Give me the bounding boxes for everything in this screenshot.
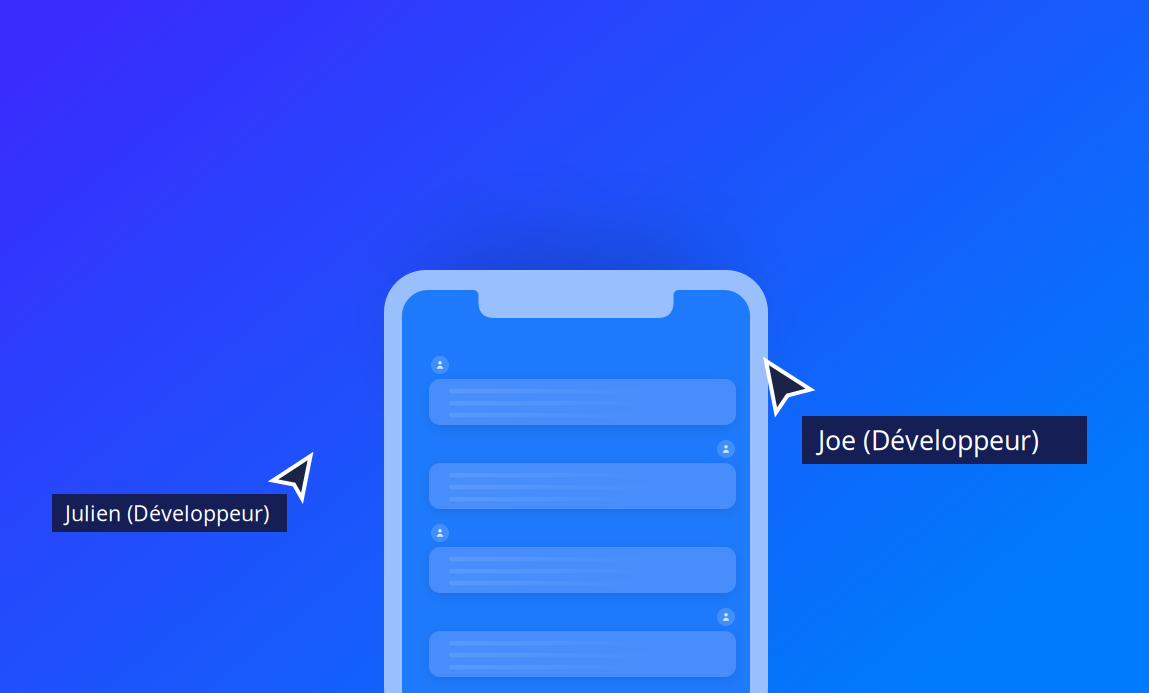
staticText: Julien (Développeur) xyxy=(65,499,269,527)
staticText: Joe (Développeur) xyxy=(818,422,1039,458)
button[interactable]: Joe (Développeur) xyxy=(802,416,1087,464)
button[interactable]: Julien (Développeur) xyxy=(52,494,287,532)
